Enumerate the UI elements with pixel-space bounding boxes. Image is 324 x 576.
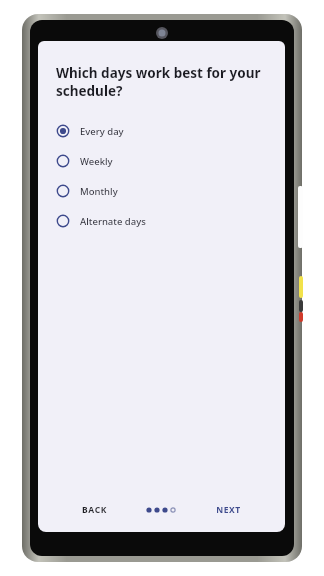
button[interactable]: BACK [48, 496, 141, 524]
button[interactable]: Not selected [56, 206, 269, 236]
other: Not selected [56, 154, 70, 168]
other: Not selected [56, 184, 70, 198]
other: Selected [56, 124, 70, 138]
button[interactable]: Not selected [56, 146, 269, 176]
staticText: Every day [80, 125, 124, 138]
staticText: NEXT [216, 504, 241, 516]
other: Not selected [56, 214, 70, 228]
staticText: Monthly [80, 185, 118, 198]
button[interactable]: NEXT [181, 496, 275, 524]
staticText: Which days work best for your schedule? [56, 64, 269, 100]
staticText: BACK [82, 504, 107, 516]
staticText: Weekly [80, 155, 113, 168]
staticText: Alternate days [80, 215, 146, 228]
button[interactable]: Not selected [56, 176, 269, 206]
button[interactable]: Selected [56, 116, 269, 146]
